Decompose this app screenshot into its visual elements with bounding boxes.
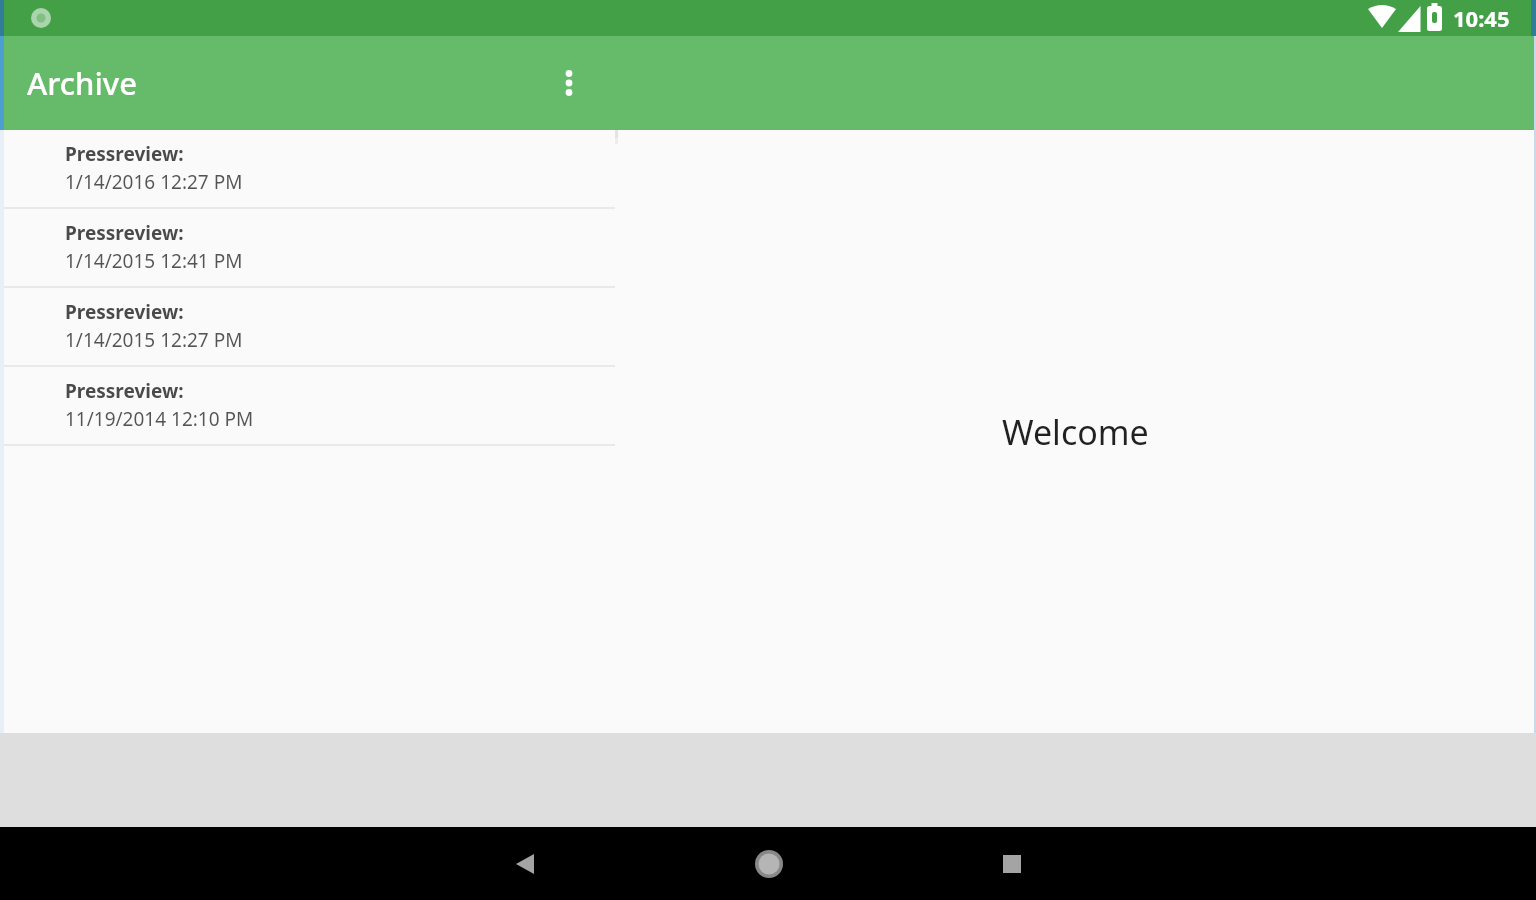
staticText: 1/14/2015 12:27 PM (65, 327, 243, 353)
staticText: 11/19/2014 12:10 PM (65, 406, 254, 432)
button[interactable] (988, 840, 1036, 888)
staticText: Pressreview: (65, 299, 184, 325)
button[interactable]: Pressreview: (0, 209, 615, 286)
staticText: Welcome (1002, 409, 1149, 455)
staticText: Archive (27, 62, 137, 104)
staticText: 1/14/2016 12:27 PM (65, 169, 243, 195)
staticText: 1/14/2015 12:41 PM (65, 248, 243, 274)
button[interactable]: Pressreview: (0, 288, 615, 365)
button[interactable] (501, 840, 549, 888)
staticText: 10:45 (1453, 3, 1510, 33)
button[interactable] (545, 59, 593, 107)
staticText: Pressreview: (65, 141, 184, 167)
staticText: Pressreview: (65, 378, 184, 404)
staticText: Pressreview: (65, 220, 184, 246)
button[interactable] (745, 840, 793, 888)
button[interactable]: Pressreview: (0, 130, 615, 207)
button[interactable]: Pressreview: (0, 367, 615, 444)
